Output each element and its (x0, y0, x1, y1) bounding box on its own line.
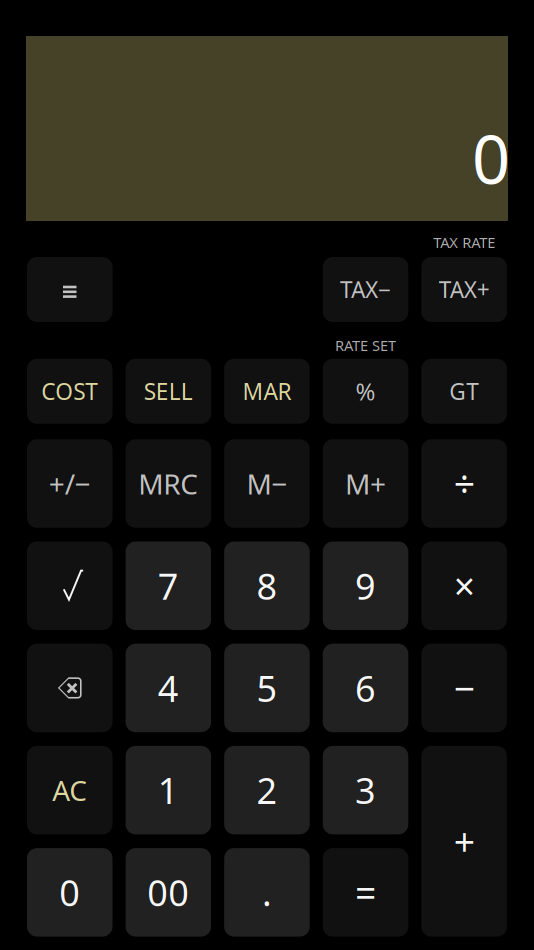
staticText: + (454, 816, 475, 866)
button[interactable]: 8 (224, 541, 310, 630)
staticText: M+ (345, 465, 386, 502)
button[interactable]: 00 (126, 848, 211, 937)
staticText: 6 (355, 664, 376, 712)
staticText: RATE SET (335, 335, 396, 355)
button[interactable]: 0 (27, 848, 112, 937)
staticText: % (355, 375, 375, 407)
staticText: 9 (355, 562, 376, 610)
button[interactable]: 4 (126, 644, 211, 732)
button[interactable]: − (421, 644, 507, 732)
button[interactable]: 1 (126, 746, 211, 834)
button[interactable]: M+ (323, 439, 408, 528)
staticText: TAX RATE (433, 232, 495, 252)
staticText: TAX+ (439, 274, 490, 304)
staticText: 0 (472, 114, 510, 202)
staticText: 8 (256, 562, 277, 610)
button[interactable]: % (323, 359, 408, 424)
button[interactable]: 3 (323, 746, 408, 834)
button[interactable]: M− (224, 439, 310, 528)
staticText: 7 (158, 562, 179, 610)
staticText: M− (246, 465, 287, 502)
staticText: 0 (59, 868, 80, 916)
button[interactable]: 9 (323, 541, 408, 630)
staticText: = (355, 868, 376, 917)
button[interactable]: TAX+ (421, 257, 507, 322)
button[interactable]: TAX− (323, 257, 408, 322)
button[interactable]: 7 (126, 541, 211, 630)
button[interactable]: 2 (224, 746, 310, 834)
staticText: 4 (158, 664, 179, 712)
staticText: TAX− (340, 274, 391, 304)
staticText: × (454, 561, 475, 611)
staticText: COST (41, 376, 98, 406)
button[interactable]: . (224, 848, 310, 937)
staticText: MAR (242, 376, 291, 406)
button[interactable]: COST (27, 359, 112, 424)
button[interactable]: Menu (27, 257, 112, 322)
staticText: 00 (147, 868, 189, 916)
button[interactable]: + (421, 746, 507, 937)
button[interactable]: AC (27, 746, 112, 834)
button[interactable]: Delete (27, 644, 112, 732)
staticText: SELL (144, 376, 193, 406)
button[interactable]: Square root (27, 541, 112, 630)
button[interactable]: × (421, 541, 507, 630)
staticText: 3 (355, 766, 376, 814)
staticText: AC (52, 772, 87, 809)
staticText: 5 (256, 664, 277, 712)
button[interactable]: = (323, 848, 408, 937)
button[interactable]: ÷ (421, 439, 507, 528)
staticText: MRC (138, 465, 198, 502)
staticText: 2 (256, 766, 277, 814)
staticText: . (262, 868, 272, 916)
button[interactable]: SELL (126, 359, 211, 424)
staticText: ÷ (454, 459, 475, 508)
button[interactable]: 6 (323, 644, 408, 732)
staticText: GT (449, 376, 479, 406)
button[interactable]: MRC (126, 439, 211, 528)
staticText: − (454, 663, 475, 713)
button[interactable]: MAR (224, 359, 310, 424)
staticText: 1 (158, 766, 179, 814)
staticText: +/− (49, 465, 91, 502)
button[interactable]: GT (421, 359, 507, 424)
button[interactable]: +/− (27, 439, 112, 528)
button[interactable]: 5 (224, 644, 310, 732)
